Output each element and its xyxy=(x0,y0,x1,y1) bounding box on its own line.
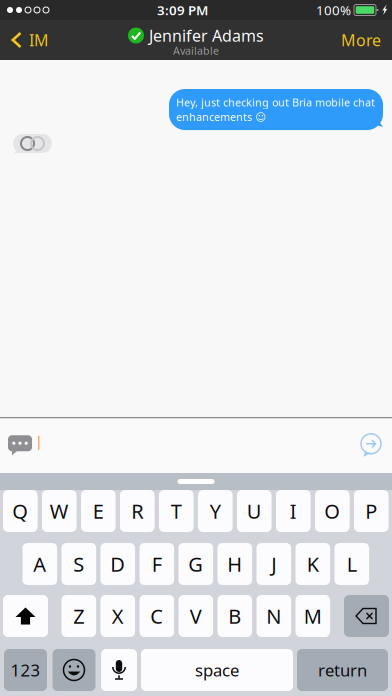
staticText: L xyxy=(347,550,357,578)
staticText: S xyxy=(73,550,84,578)
button[interactable]: T xyxy=(159,490,194,532)
button[interactable]: U xyxy=(237,490,272,532)
button[interactable]: B xyxy=(217,595,252,637)
staticText: R xyxy=(131,497,143,525)
staticText: K xyxy=(307,550,319,578)
button[interactable]: More xyxy=(331,20,392,60)
button[interactable]: Y xyxy=(198,490,233,532)
staticText: Z xyxy=(73,602,84,630)
staticText: N xyxy=(266,602,281,630)
staticText: Available xyxy=(173,43,219,58)
button[interactable]: M xyxy=(295,595,330,637)
button[interactable]: Dictate xyxy=(101,649,137,691)
staticText: D xyxy=(110,550,125,578)
button[interactable]: W xyxy=(42,490,77,532)
staticText: 123 xyxy=(10,659,40,681)
staticText: G xyxy=(188,550,203,578)
button[interactable]: Z xyxy=(61,595,96,637)
staticText: V xyxy=(190,602,202,630)
button[interactable]: X xyxy=(100,595,135,637)
button[interactable]: H xyxy=(217,543,252,585)
button[interactable]: IM xyxy=(0,20,59,60)
button[interactable]: space xyxy=(141,649,293,691)
button[interactable]: Delete xyxy=(344,595,389,637)
button[interactable]: Q xyxy=(3,490,38,532)
button[interactable]: Send xyxy=(358,427,392,465)
button[interactable]: S xyxy=(61,543,96,585)
button[interactable]: K xyxy=(295,543,330,585)
staticText: O xyxy=(324,497,340,525)
staticText: More xyxy=(341,29,381,51)
button[interactable]: N xyxy=(256,595,291,637)
button[interactable]: O xyxy=(315,490,350,532)
button[interactable]: F xyxy=(139,543,174,585)
button[interactable]: V xyxy=(178,595,213,637)
staticText: U xyxy=(247,497,262,525)
staticText: T xyxy=(171,497,182,525)
button[interactable]: Emoji xyxy=(52,649,95,691)
staticText: IM xyxy=(29,29,49,51)
button[interactable]: C xyxy=(139,595,174,637)
staticText: Hey, just checking out Bria mobile chat … xyxy=(176,95,375,124)
button[interactable]: D xyxy=(100,543,135,585)
staticText: E xyxy=(93,497,104,525)
staticText: M xyxy=(304,602,322,630)
staticText: space xyxy=(195,659,239,681)
button[interactable]: G xyxy=(178,543,213,585)
staticText: A xyxy=(33,550,46,578)
button[interactable]: P xyxy=(354,490,389,532)
staticText: I xyxy=(290,497,297,525)
staticText: B xyxy=(228,602,241,630)
button[interactable]: I xyxy=(276,490,311,532)
button[interactable]: A xyxy=(22,543,57,585)
button[interactable]: J xyxy=(256,543,291,585)
staticText: H xyxy=(227,550,242,578)
button[interactable]: Message options xyxy=(0,429,38,462)
staticText: Y xyxy=(210,497,221,525)
button[interactable]: return xyxy=(297,649,388,691)
staticText: C xyxy=(150,602,163,630)
button[interactable]: E xyxy=(81,490,116,532)
staticText: Jennifer Adams xyxy=(149,25,264,46)
staticText: X xyxy=(112,602,124,630)
staticText: F xyxy=(152,550,162,578)
staticText: return xyxy=(318,659,367,681)
staticText: W xyxy=(50,497,69,525)
staticText: P xyxy=(365,497,377,525)
button[interactable]: R xyxy=(120,490,155,532)
staticText: 100% xyxy=(316,1,351,19)
staticText: 3:09 PM xyxy=(157,1,208,19)
staticText: J xyxy=(271,550,276,578)
staticText: Q xyxy=(12,497,28,525)
button[interactable]: Shift xyxy=(3,595,48,637)
button[interactable]: Numbers xyxy=(4,649,47,691)
button[interactable]: L xyxy=(334,543,369,585)
